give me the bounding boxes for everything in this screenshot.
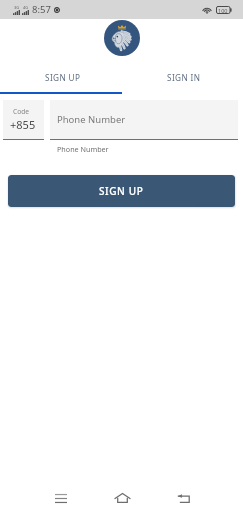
button[interactable]: SIGN UP	[0, 64, 121, 91]
staticText: SIGN UP	[45, 72, 81, 83]
staticText: Phone Number	[57, 113, 126, 126]
staticText: SIGN UP	[99, 184, 144, 198]
staticText: Phone Number	[57, 144, 109, 154]
staticText: Code	[13, 107, 29, 116]
staticText: 4G	[23, 5, 29, 10]
button[interactable]: Home	[98, 487, 146, 509]
button[interactable]: Phone Number	[50, 100, 238, 139]
button[interactable]: Recent apps	[37, 487, 85, 509]
button[interactable]: SIGN UP	[8, 175, 235, 207]
staticText: 8:57	[32, 3, 51, 16]
staticText: +855	[10, 117, 36, 132]
button[interactable]: Code	[3, 100, 44, 139]
staticText: 3G	[14, 5, 20, 10]
button[interactable]: SIGN IN	[121, 64, 243, 91]
button[interactable]: Back	[159, 487, 207, 509]
staticText: SIGN IN	[167, 72, 201, 83]
staticText: 100	[218, 7, 228, 14]
